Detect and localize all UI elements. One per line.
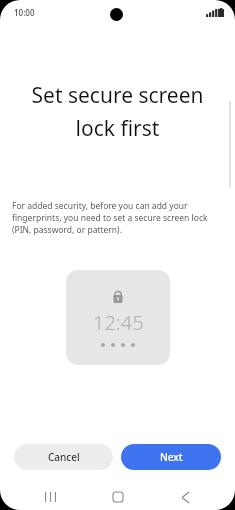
staticText: lock first xyxy=(0,114,235,143)
staticText: 12:45 xyxy=(93,309,144,336)
button[interactable]: Cancel xyxy=(14,444,113,470)
staticText: (PIN, password, or pattern). xyxy=(12,224,122,236)
staticText: Set secure screen xyxy=(0,81,235,110)
button[interactable]: Next xyxy=(121,444,221,470)
button[interactable]: Home xyxy=(101,484,135,510)
staticText: For added security, before you can add y… xyxy=(12,200,188,212)
staticText: 10:00 xyxy=(14,7,35,18)
staticText: fingerprints, you need to set a secure s… xyxy=(12,212,208,224)
button[interactable]: Back xyxy=(168,484,202,510)
button[interactable]: Recent apps xyxy=(33,484,67,510)
staticText: Next xyxy=(160,450,183,464)
staticText: Cancel xyxy=(48,450,80,464)
